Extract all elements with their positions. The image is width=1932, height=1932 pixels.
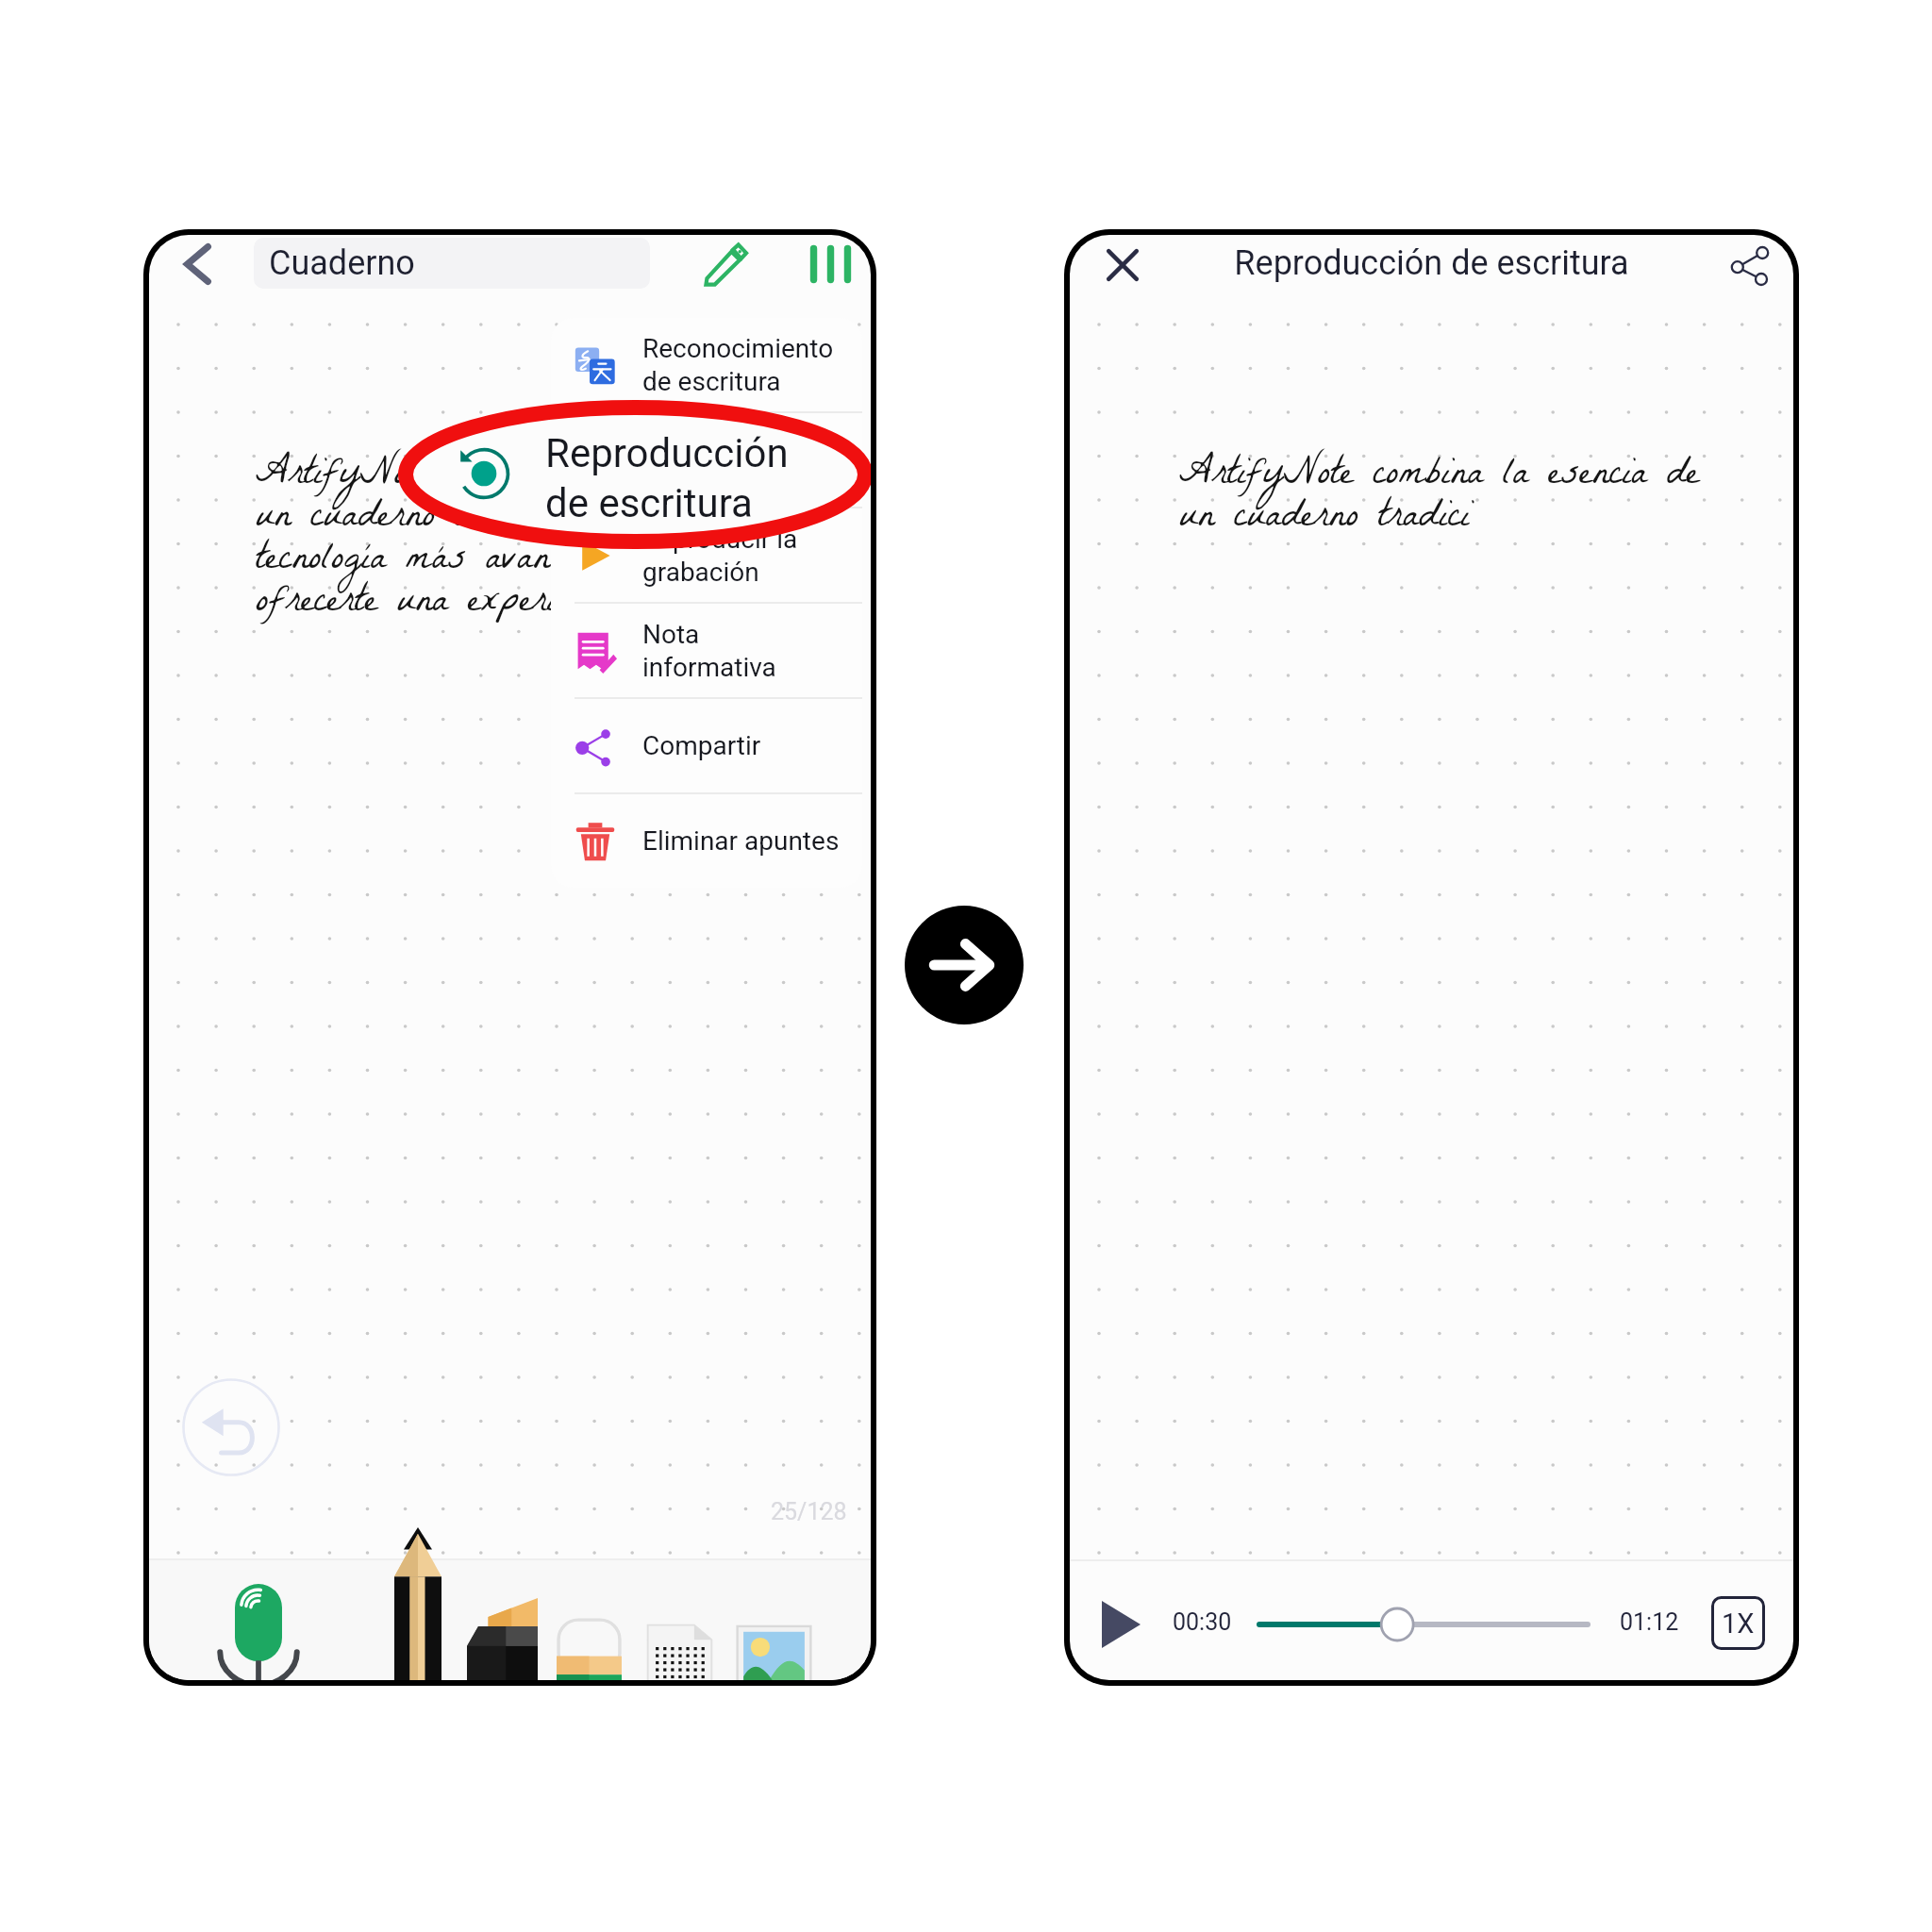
button[interactable]: Share (1721, 237, 1779, 295)
staticText: Cuaderno (269, 243, 415, 283)
button[interactable]: Next step (905, 906, 1024, 1024)
staticText: Reproducir la grabación (642, 524, 798, 588)
staticText: Reproducción de escritura (1070, 243, 1793, 283)
staticText: Reproducción de escritura (642, 428, 805, 492)
staticText: 01:12 (1620, 1608, 1679, 1636)
staticText: ArtifyNote combina la esencia de (256, 441, 776, 513)
staticText: 25/128 (771, 1498, 847, 1525)
button[interactable]: Nota informativa (551, 604, 862, 697)
button[interactable]: Playback speed (1711, 1596, 1765, 1650)
staticText: 00:30 (1173, 1608, 1232, 1636)
button[interactable]: Compartir (551, 699, 862, 792)
button[interactable]: Play (1091, 1594, 1151, 1655)
button[interactable]: Voice recording (225, 1584, 291, 1680)
staticText: Compartir (642, 730, 761, 761)
staticText: Eliminar apuntes (642, 825, 840, 857)
button[interactable]: Reconocimiento de escritura (551, 318, 862, 411)
button[interactable]: More options (801, 235, 859, 293)
button[interactable]: Marker (467, 1598, 538, 1680)
staticText: 1X (1722, 1607, 1755, 1640)
staticText: Nota informativa (642, 619, 776, 683)
button[interactable]: Reproducir la grabación (551, 508, 862, 602)
button[interactable]: Pencil (394, 1527, 441, 1680)
staticText: tecnología más avanzada para (256, 526, 708, 598)
button[interactable]: Close (1093, 236, 1152, 294)
button[interactable]: Page template (643, 1623, 716, 1680)
button[interactable]: Reproducción de escritura (551, 413, 862, 507)
staticText: ofrecerte una experiencia (256, 569, 625, 641)
button[interactable]: Eraser (557, 1618, 622, 1680)
staticText: Reconocimiento de escritura (642, 333, 834, 397)
button[interactable]: Insert image (736, 1623, 812, 1680)
staticText: un cuaderno tradici (1179, 484, 1470, 556)
button[interactable]: Eliminar apuntes (551, 794, 862, 888)
button[interactable]: Cuaderno (254, 238, 650, 289)
staticText: ArtifyNote combina la esencia de (1179, 441, 1700, 513)
staticText: Reproducción de escritura (545, 430, 789, 526)
button[interactable]: Seek (1242, 1604, 1605, 1645)
button[interactable]: Back (171, 238, 224, 291)
button[interactable]: Edit (696, 235, 755, 293)
staticText: un cuaderno tradicional con la (256, 484, 709, 556)
